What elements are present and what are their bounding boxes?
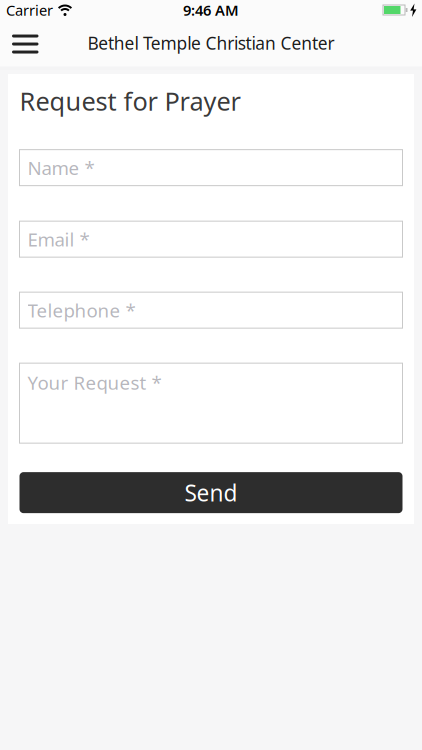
staticText: Name *: [27, 155, 94, 180]
staticText: Email *: [27, 227, 89, 251]
staticText: Telephone *: [27, 298, 135, 322]
button[interactable]: Your Request *: [19, 363, 402, 443]
staticText: Carrier: [6, 0, 53, 20]
button[interactable]: Telephone *: [19, 292, 402, 328]
button[interactable]: Name *: [19, 150, 402, 186]
staticText: Send: [184, 478, 237, 508]
staticText: 9:46 AM: [183, 0, 239, 20]
staticText: Bethel Temple Christian Center: [87, 31, 335, 54]
button[interactable]: Send: [19, 472, 402, 513]
button[interactable]: Menu: [0, 27, 38, 58]
staticText: Your Request *: [27, 370, 161, 395]
button[interactable]: Email *: [19, 221, 402, 257]
staticText: Request for Prayer: [19, 84, 240, 118]
